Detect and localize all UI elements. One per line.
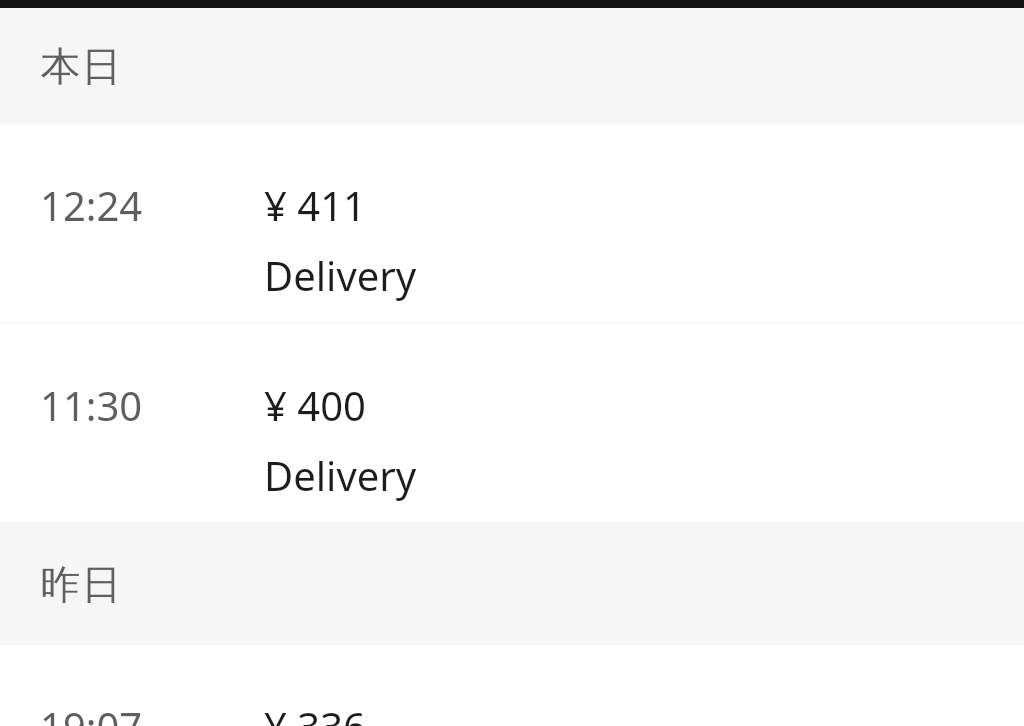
- staticText: ¥ 336: [264, 699, 366, 726]
- staticText: 12:24: [40, 178, 143, 232]
- staticText: ¥ 400: [264, 378, 366, 432]
- staticText: Delivery: [264, 448, 417, 502]
- staticText: Delivery: [264, 248, 417, 302]
- staticText: ¥ 411: [264, 178, 366, 232]
- staticText: 19:07: [40, 699, 143, 726]
- button[interactable]: 19:07: [0, 645, 1024, 726]
- staticText: 昨日: [40, 559, 122, 609]
- staticText: 11:30: [40, 378, 143, 432]
- button[interactable]: 12:24: [0, 124, 1024, 323]
- staticText: 本日: [40, 41, 122, 91]
- button[interactable]: 11:30: [0, 324, 1024, 522]
